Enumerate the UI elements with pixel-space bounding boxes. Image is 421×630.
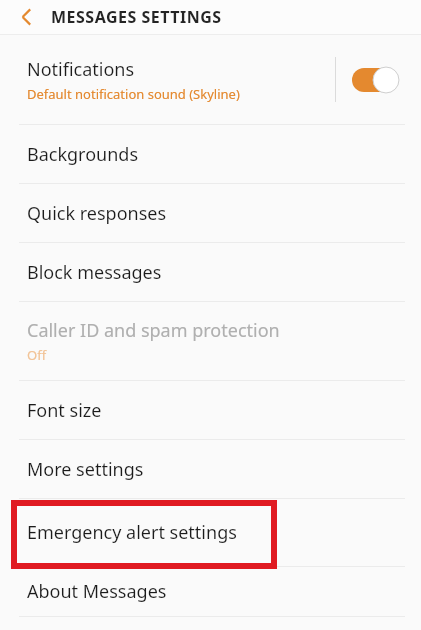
staticText: Block messages (27, 260, 162, 285)
button[interactable]: Font size (0, 381, 421, 439)
button[interactable]: Emergency alert settings (0, 499, 421, 566)
button[interactable]: Back (7, 0, 47, 34)
staticText: Default notification sound (Skyline) (27, 85, 240, 103)
button[interactable]: Block messages (0, 243, 421, 301)
button[interactable]: Backgrounds (0, 125, 421, 183)
staticText: Backgrounds (27, 142, 139, 167)
staticText: About Messages (27, 579, 167, 604)
staticText: MESSAGES SETTINGS (51, 6, 222, 28)
staticText: More settings (27, 457, 144, 482)
button[interactable]: Notifications (0, 35, 421, 124)
staticText: Quick responses (27, 201, 167, 226)
staticText: Font size (27, 398, 102, 423)
button[interactable]: About Messages (0, 567, 421, 616)
button[interactable]: More settings (0, 440, 421, 498)
staticText: Notifications (27, 57, 135, 82)
staticText: Off (27, 346, 47, 364)
button[interactable]: Quick responses (0, 184, 421, 242)
button[interactable]: Caller ID and spam protection (0, 302, 421, 380)
staticText: Emergency alert settings (27, 520, 237, 545)
staticText: Caller ID and spam protection (27, 318, 280, 343)
button[interactable]: Notifications toggle (352, 68, 398, 92)
